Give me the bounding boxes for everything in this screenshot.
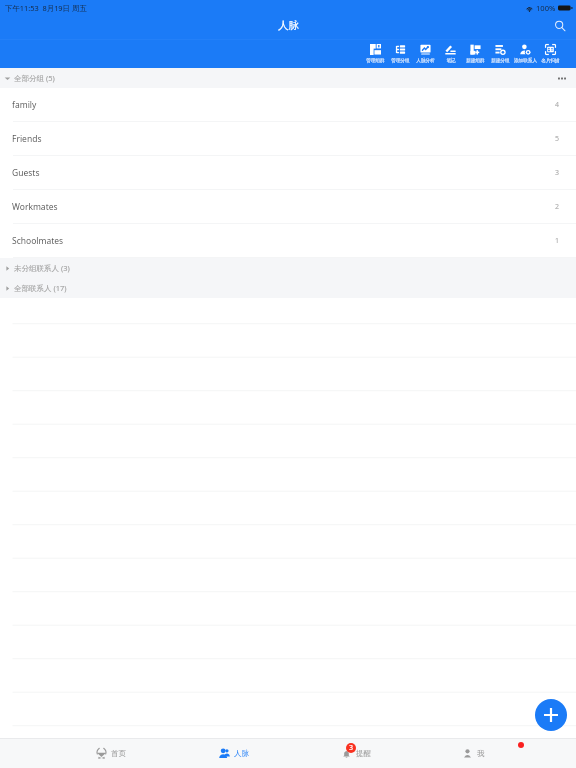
button[interactable]: 管理分组	[388, 40, 413, 64]
button[interactable]: Add contact	[535, 699, 567, 731]
button[interactable]: 新建组群	[463, 40, 488, 64]
button[interactable]: 我	[434, 739, 534, 768]
staticText: 全部分组 (5)	[14, 73, 55, 83]
button[interactable]: 新建分组	[488, 40, 513, 64]
button[interactable]: 笔记	[438, 40, 463, 64]
staticText: 我	[477, 749, 485, 758]
button[interactable]: Guests	[0, 156, 576, 190]
staticText: 管理组群	[366, 58, 385, 64]
staticText: 3	[555, 168, 560, 178]
staticText: 4	[555, 100, 560, 110]
staticText: Guests	[12, 167, 40, 179]
button[interactable]: 全部联系人 (17)	[0, 278, 576, 298]
button[interactable]: 未分组联系人 (3)	[0, 258, 576, 278]
staticText: Workmates	[12, 201, 58, 213]
staticText: 2	[555, 202, 560, 212]
button[interactable]: 人脉	[191, 739, 291, 768]
button[interactable]: family	[0, 88, 576, 122]
button[interactable]: 人脉分析	[413, 40, 438, 64]
staticText: Friends	[12, 133, 42, 145]
button[interactable]: 名片扫描	[538, 40, 563, 64]
button[interactable]: More options	[553, 69, 571, 87]
staticText: 人脉	[234, 749, 249, 758]
button[interactable]: 全部分组 (5)	[0, 68, 576, 88]
staticText: 5	[555, 134, 560, 144]
staticText: 笔记	[446, 58, 456, 64]
staticText: 1	[555, 236, 560, 246]
staticText: 添加联系人	[514, 58, 537, 64]
button[interactable]: Schoolmates	[0, 224, 576, 258]
staticText: 新建组群	[466, 58, 485, 64]
staticText: 提醒	[356, 749, 371, 758]
staticText: 未分组联系人 (3)	[14, 263, 70, 273]
staticText: Schoolmates	[12, 235, 64, 247]
staticText: 名片扫描	[541, 58, 560, 64]
staticText: 100%	[536, 3, 556, 13]
button[interactable]: 添加联系人	[513, 40, 538, 64]
staticText: 全部联系人 (17)	[14, 283, 67, 293]
staticText: 首页	[111, 749, 126, 758]
button[interactable]: 首页	[68, 739, 168, 768]
staticText: 管理分组	[391, 58, 410, 64]
staticText: 3	[349, 743, 354, 753]
button[interactable]: Workmates	[0, 190, 576, 224]
button[interactable]: 管理组群	[363, 40, 388, 64]
staticText: 下午11:53 8月19日 周五	[5, 3, 87, 13]
button[interactable]: Friends	[0, 122, 576, 156]
button[interactable]: 3	[313, 739, 413, 768]
staticText: 人脉	[278, 19, 299, 32]
staticText: family	[12, 99, 37, 111]
button[interactable]: Search	[550, 16, 570, 36]
staticText: 新建分组	[491, 58, 510, 64]
staticText: 人脉分析	[416, 58, 435, 64]
